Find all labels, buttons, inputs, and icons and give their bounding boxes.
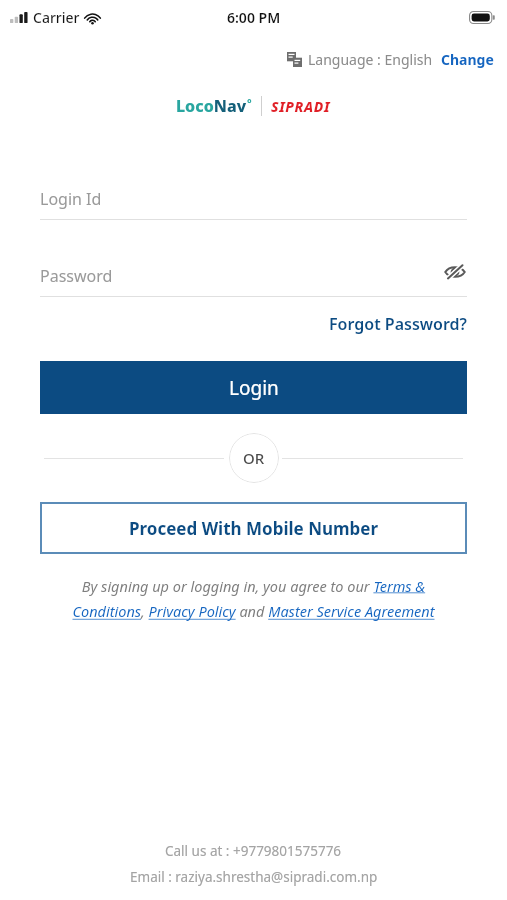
staticText: 6:00 PM [227, 8, 281, 27]
button[interactable]: Language [287, 50, 433, 69]
staticText: Change [441, 50, 494, 69]
button[interactable]: Password [40, 256, 467, 296]
staticText: Login [229, 375, 279, 401]
button[interactable]: Change [441, 50, 494, 69]
staticText: LocoNav [176, 95, 247, 117]
button[interactable]: Login [40, 361, 467, 414]
staticText: Forgot Password? [329, 313, 467, 335]
staticText: SIPRADI [271, 97, 331, 116]
staticText: Language : English [308, 50, 433, 69]
staticText: Email : raziya.shrestha@sipradi.com.np [130, 868, 378, 886]
staticText: Password [40, 265, 113, 287]
staticText: Proceed With Mobile Number [129, 517, 379, 540]
staticText: By signing up or logging in, you agree t… [52, 576, 455, 622]
staticText: Carrier [33, 8, 80, 27]
staticText: ° [247, 95, 252, 110]
button[interactable]: Login Id [40, 179, 467, 219]
button[interactable]: By signing up or logging in, you agree t… [52, 576, 455, 622]
other: Language [287, 52, 302, 67]
staticText: OR [243, 448, 265, 468]
button[interactable]: Proceed With Mobile Number [40, 502, 467, 554]
button[interactable]: Show password [443, 260, 467, 284]
staticText: Call us at : +9779801575776 [165, 842, 342, 860]
button[interactable]: Forgot Password? [329, 313, 467, 335]
staticText: Login Id [40, 188, 102, 210]
